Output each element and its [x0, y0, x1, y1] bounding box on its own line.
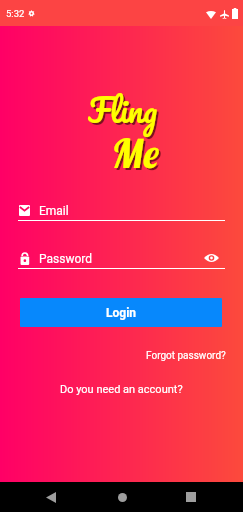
button[interactable]: Back: [21, 482, 81, 512]
staticText: Me: [114, 130, 162, 180]
button[interactable]: Forgot password?: [146, 350, 226, 362]
staticText: Login: [106, 306, 137, 320]
staticText: Email: [39, 204, 69, 218]
staticText: Fling: [90, 85, 160, 139]
button[interactable]: Do you need an account?: [60, 383, 183, 396]
button[interactable]: Show password: [204, 253, 219, 263]
other: Settings: [28, 10, 35, 17]
staticText: 5:32: [6, 8, 25, 19]
staticText: Fling: [88, 83, 158, 137]
staticText: Password: [39, 252, 93, 266]
button[interactable]: Login: [20, 298, 222, 327]
button[interactable]: Recent apps: [161, 482, 221, 512]
button[interactable]: Home: [92, 482, 152, 512]
staticText: Me: [112, 128, 160, 178]
